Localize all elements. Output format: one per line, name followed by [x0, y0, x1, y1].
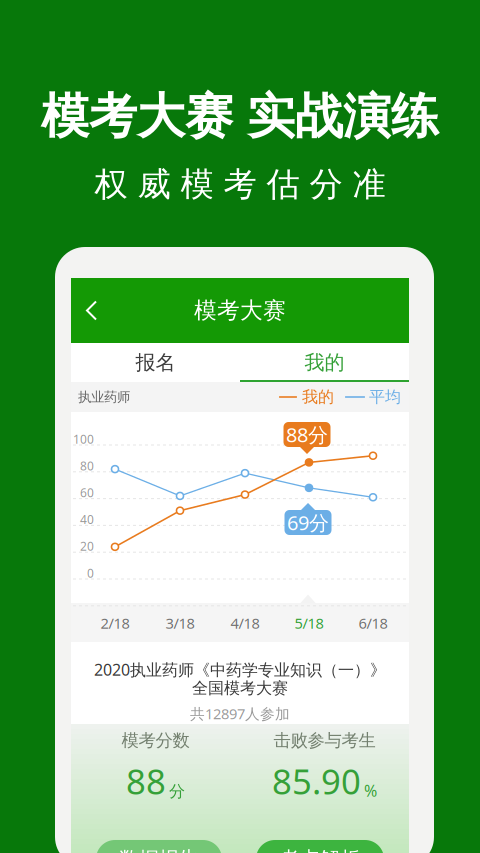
staticText: 69分 [287, 509, 329, 536]
button[interactable]: 6/18 [342, 603, 404, 642]
button[interactable]: 5/18 [278, 603, 340, 642]
staticText: 3/18 [165, 613, 194, 633]
staticText: 击败参与考生 [273, 730, 375, 751]
button[interactable]: 报名 [71, 343, 240, 382]
staticText: 40 [80, 511, 94, 527]
staticText: 共12897人参加 [190, 704, 290, 723]
button[interactable]: 考点解析 [256, 840, 384, 853]
staticText: 5/18 [294, 613, 323, 633]
staticText: 数据报告 [119, 847, 199, 853]
staticText: 100 [73, 431, 94, 447]
staticText: 报名 [135, 350, 175, 375]
staticText: 我的 [304, 350, 344, 375]
staticText: 考点解析 [280, 847, 360, 853]
button[interactable]: 2/18 [84, 603, 146, 642]
staticText: 执业药师 [78, 389, 130, 405]
button[interactable]: Back [71, 289, 98, 331]
button[interactable]: 数据报告 [96, 840, 222, 853]
staticText: 4/18 [230, 613, 259, 633]
staticText: 模考大赛 [194, 297, 286, 324]
staticText: 20 [80, 538, 94, 554]
staticText: 我的 [302, 387, 334, 407]
button[interactable]: 4/18 [214, 603, 276, 642]
staticText: 88分 [286, 421, 328, 448]
staticText: 模考分数 [121, 730, 189, 751]
staticText: 88 [126, 758, 166, 804]
staticText: 2/18 [100, 613, 129, 633]
staticText: 2020执业药师《中药学专业知识（一）》 [94, 659, 386, 680]
staticText: 权 威 模 考 估 分 准 [94, 164, 385, 205]
staticText: 平均 [369, 387, 401, 407]
staticText: 85.90 [272, 758, 361, 804]
staticText: 6/18 [358, 613, 387, 633]
staticText: 80 [80, 458, 94, 474]
staticText: 0 [87, 565, 94, 581]
button[interactable]: 我的 [240, 343, 409, 382]
staticText: % [364, 780, 377, 801]
staticText: 全国模考大赛 [192, 678, 288, 698]
staticText: 模考大赛 实战演练 [41, 87, 439, 146]
staticText: 60 [80, 485, 94, 500]
button[interactable]: 3/18 [149, 603, 211, 642]
staticText: 分 [169, 781, 185, 801]
